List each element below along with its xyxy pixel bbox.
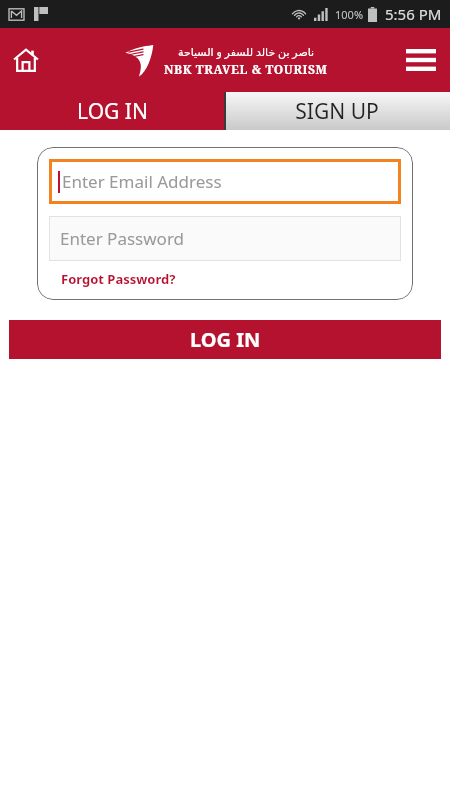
staticText: LOG IN	[77, 97, 148, 126]
staticText: Forgot Password?	[61, 270, 176, 288]
button[interactable]: SIGN UP	[224, 92, 450, 130]
staticText: SIGN UP	[295, 97, 379, 126]
button[interactable]: LOG IN	[9, 320, 441, 359]
button[interactable]: Enter Email Address	[49, 159, 401, 204]
button[interactable]: Menu	[400, 39, 442, 81]
staticText: LOG IN	[190, 326, 261, 353]
button[interactable]: LOG IN	[0, 92, 224, 130]
staticText: Enter Password	[60, 227, 185, 250]
staticText: NBK TRAVEL & TOURISM	[164, 61, 328, 77]
button[interactable]: Home	[6, 40, 46, 80]
staticText: 5:56 PM	[385, 4, 442, 24]
button[interactable]: Enter Password	[49, 216, 401, 261]
staticText: 100%	[335, 7, 364, 22]
staticText: ناصر بن خالد للسفر و السياحة	[178, 44, 315, 59]
staticText: Enter Email Address	[62, 170, 222, 193]
button[interactable]: Forgot Password?	[61, 270, 176, 288]
